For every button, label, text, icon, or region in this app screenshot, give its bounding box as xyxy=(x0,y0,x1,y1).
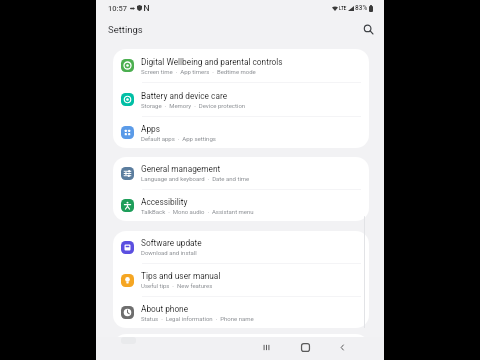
staticText: 83% xyxy=(355,4,368,12)
staticText: Status · Legal information · Phone name xyxy=(141,315,254,322)
button[interactable]: Recents xyxy=(258,339,274,355)
staticText: Battery and device care xyxy=(141,91,228,101)
staticText: Language and keyboard · Date and time xyxy=(141,175,250,182)
button[interactable]: Search xyxy=(358,19,378,39)
button[interactable]: Tips and user manual xyxy=(113,264,369,296)
staticText: Software update xyxy=(141,238,202,248)
staticText: Digital Wellbeing and parental controls xyxy=(141,57,283,67)
button[interactable]: Software update xyxy=(113,231,369,263)
staticText: About phone xyxy=(141,304,189,314)
staticText: Screen time · App timers · Bedtime mode xyxy=(141,68,256,75)
staticText: LTE xyxy=(339,6,347,11)
staticText: TalkBack · Mono audio · Assistant menu xyxy=(141,208,254,215)
button[interactable]: Back xyxy=(334,339,350,355)
button[interactable]: About phone xyxy=(113,297,369,328)
button[interactable]: Battery and device care xyxy=(113,83,369,116)
button[interactable]: Digital Wellbeing and parental controls xyxy=(113,49,369,82)
staticText: 10:57 xyxy=(108,4,128,13)
button[interactable]: General management xyxy=(113,157,369,189)
staticText: Useful tips · New features xyxy=(141,282,213,289)
staticText: Settings xyxy=(108,24,143,35)
button[interactable]: Apps xyxy=(113,117,369,148)
staticText: Accessibility xyxy=(141,197,188,207)
staticText: Default apps · App settings xyxy=(141,135,216,142)
staticText: Storage · Memory · Device protection xyxy=(141,102,246,109)
staticText: General management xyxy=(141,164,221,174)
staticText: Tips and user manual xyxy=(141,271,221,281)
staticText: Apps xyxy=(141,124,161,134)
button[interactable]: Accessibility xyxy=(113,190,369,221)
button[interactable]: Home xyxy=(297,339,313,355)
staticText: Download and install xyxy=(141,249,197,256)
